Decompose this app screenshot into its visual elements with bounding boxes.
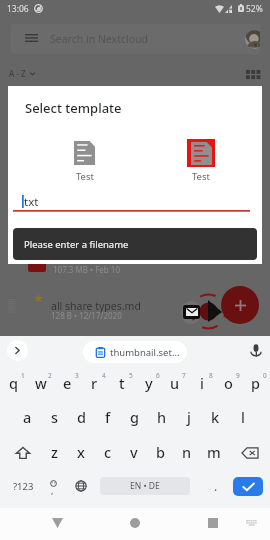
staticText: d xyxy=(77,407,86,427)
button[interactable]: j xyxy=(175,401,202,435)
button[interactable]: Voice input xyxy=(248,343,264,359)
button[interactable]: Enter xyxy=(233,477,263,496)
button[interactable]: ?123 xyxy=(8,470,38,502)
button[interactable]: Back xyxy=(45,510,69,536)
button[interactable]: A - Z xyxy=(9,68,36,79)
button[interactable]: l xyxy=(229,401,256,435)
button[interactable]: d xyxy=(68,401,95,435)
staticText: Select template xyxy=(25,99,122,117)
staticText: 13:06 xyxy=(7,3,29,15)
staticText: 107.3 MB • Feb 10 xyxy=(53,264,120,275)
staticText: 128 B • 12/17/2020 xyxy=(51,310,122,321)
button[interactable]: m xyxy=(200,436,227,470)
button[interactable]: r xyxy=(81,367,108,401)
staticText: k xyxy=(211,407,220,427)
staticText: r xyxy=(91,373,98,393)
staticText: p xyxy=(251,373,260,393)
button[interactable]: o xyxy=(215,367,242,401)
button[interactable]: i xyxy=(188,367,215,401)
button[interactable]: y xyxy=(135,367,162,401)
button[interactable]: Open navigation drawer xyxy=(11,24,260,54)
button[interactable]: all share types.md xyxy=(0,286,270,328)
button[interactable]: b xyxy=(147,436,174,470)
staticText: Please enter a filename xyxy=(24,238,129,251)
staticText: i xyxy=(200,373,204,393)
staticText: 6 xyxy=(156,371,160,380)
staticText: 9 xyxy=(236,371,240,380)
button[interactable]: Change language xyxy=(71,470,91,502)
staticText: y xyxy=(145,373,153,393)
staticText: . xyxy=(214,478,218,494)
staticText: m xyxy=(207,442,221,462)
button[interactable]: More suggestions xyxy=(7,340,28,361)
button[interactable]: Test xyxy=(174,136,228,184)
staticText: A - Z xyxy=(9,68,26,79)
button[interactable]: c xyxy=(94,436,121,470)
button[interactable]: u xyxy=(161,367,188,401)
staticText: Search in Nextcloud xyxy=(50,32,148,46)
staticText: all share types.md xyxy=(51,299,141,313)
button[interactable]: g xyxy=(121,401,148,435)
staticText: ?123 xyxy=(13,480,34,493)
staticText: 5 xyxy=(129,371,133,380)
staticText: 7 xyxy=(182,371,186,380)
button[interactable]: Test xyxy=(58,136,112,184)
staticText: 1 xyxy=(21,371,25,380)
button[interactable]: Send by e-mail xyxy=(183,305,200,319)
staticText: 0 xyxy=(263,371,267,380)
button[interactable]: p xyxy=(242,367,269,401)
button[interactable]: w xyxy=(27,367,54,401)
button[interactable]: Backspace xyxy=(236,436,263,469)
staticText: w xyxy=(35,373,47,393)
staticText: n xyxy=(182,442,192,462)
button[interactable]: 107.3 MB • Feb 10 xyxy=(0,264,270,282)
button[interactable]: . xyxy=(206,470,226,502)
button[interactable]: Recent apps xyxy=(201,510,225,536)
button[interactable]: e xyxy=(54,367,81,401)
button[interactable]: h xyxy=(148,401,175,435)
staticText: , xyxy=(51,484,54,496)
staticText: e xyxy=(63,373,72,393)
button[interactable]: thumbnail.set… xyxy=(83,341,187,363)
staticText: v xyxy=(130,442,138,462)
button[interactable]: EN • DE xyxy=(100,477,190,495)
button[interactable]: txt xyxy=(13,190,253,212)
staticText: 3 xyxy=(75,371,79,380)
staticText: o xyxy=(224,373,233,393)
button[interactable]: f xyxy=(94,401,121,435)
button[interactable]: k xyxy=(202,401,229,435)
staticText: EN • DE xyxy=(130,480,160,492)
staticText: txt xyxy=(24,194,39,210)
staticText: z xyxy=(51,442,58,462)
button[interactable]: Switch to grid view xyxy=(246,67,259,80)
staticText: Test xyxy=(192,170,210,183)
button[interactable]: v xyxy=(120,436,147,470)
button[interactable]: x xyxy=(67,436,94,470)
button[interactable]: Shift xyxy=(9,436,36,469)
staticText: 52% xyxy=(246,3,263,15)
button[interactable]: q xyxy=(0,367,27,401)
staticText: l xyxy=(241,407,245,427)
other: Open navigation drawer xyxy=(25,34,38,42)
staticText: 8 xyxy=(209,371,213,380)
button[interactable]: t xyxy=(108,367,135,401)
button[interactable]: n xyxy=(173,436,200,470)
staticText: thumbnail.set… xyxy=(110,346,180,359)
button[interactable]: Account xyxy=(245,30,260,49)
button[interactable]: Emoji and comma xyxy=(43,470,63,502)
staticText: s xyxy=(51,407,59,427)
button[interactable]: s xyxy=(41,401,68,435)
staticText: x xyxy=(77,442,85,462)
staticText: Test xyxy=(76,170,94,183)
staticText: h xyxy=(157,407,167,427)
button[interactable]: z xyxy=(41,436,68,470)
button[interactable]: a xyxy=(14,401,41,435)
staticText: u xyxy=(170,373,180,393)
button[interactable]: Home xyxy=(123,510,148,536)
staticText: g xyxy=(130,407,139,427)
staticText: q xyxy=(9,373,18,393)
button[interactable]: Add new file xyxy=(221,286,259,324)
staticText: b xyxy=(156,442,165,462)
staticText: a xyxy=(23,407,32,427)
button[interactable]: Switch keyboard xyxy=(240,510,263,536)
